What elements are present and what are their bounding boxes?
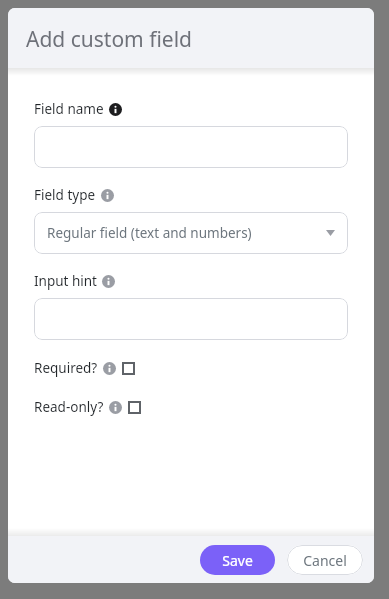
staticText: Add custom field xyxy=(26,25,193,54)
staticText: Field name xyxy=(34,100,104,118)
button[interactable] xyxy=(34,298,348,340)
staticText: Save xyxy=(222,551,253,570)
staticText: Regular field (text and numbers) xyxy=(47,224,252,242)
staticText: Input hint xyxy=(34,272,97,290)
button[interactable]: Cancel xyxy=(287,545,363,575)
button[interactable]: Required? xyxy=(34,359,135,377)
other: Read-only? xyxy=(128,401,141,414)
other: Required? xyxy=(122,362,135,375)
staticText: Read-only? xyxy=(34,398,104,416)
staticText: Cancel xyxy=(303,551,347,570)
button[interactable]: Save xyxy=(200,545,275,575)
button[interactable] xyxy=(34,126,348,168)
button[interactable]: Read-only? xyxy=(34,398,141,416)
staticText: Required? xyxy=(34,359,98,377)
button[interactable]: Regular field (text and numbers) xyxy=(34,212,348,254)
staticText: Field type xyxy=(34,186,96,204)
